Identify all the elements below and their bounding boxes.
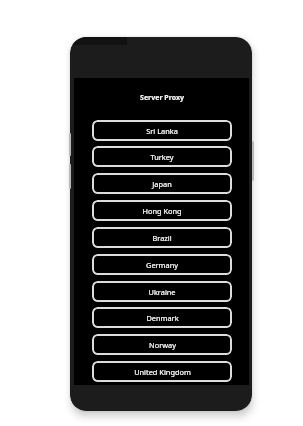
staticText: Japan xyxy=(152,179,172,189)
button[interactable]: Germany xyxy=(92,254,232,275)
staticText: Server Proxy xyxy=(140,93,184,103)
button[interactable]: Norway xyxy=(92,334,232,355)
staticText: Brazil xyxy=(152,233,172,243)
staticText: Germany xyxy=(146,260,178,270)
button[interactable]: Ukraine xyxy=(92,281,232,302)
staticText: Denmark xyxy=(146,313,179,323)
button[interactable]: Brazil xyxy=(92,227,232,248)
staticText: Turkey xyxy=(150,152,174,162)
other: Volume up xyxy=(69,133,71,156)
button[interactable]: United Kingdom xyxy=(92,361,232,382)
button[interactable]: Turkey xyxy=(92,146,232,167)
staticText: Sri Lanka xyxy=(146,126,178,136)
staticText: United Kingdom xyxy=(134,367,191,377)
button[interactable]: Hong Kong xyxy=(92,200,232,221)
staticText: Ukraine xyxy=(148,287,176,297)
staticText: Norway xyxy=(149,340,176,350)
other: Volume down xyxy=(69,164,71,189)
button[interactable]: Denmark xyxy=(92,307,232,328)
button[interactable]: Sri Lanka xyxy=(92,120,232,141)
staticText: Hong Kong xyxy=(142,206,182,216)
button[interactable]: Japan xyxy=(92,173,232,194)
